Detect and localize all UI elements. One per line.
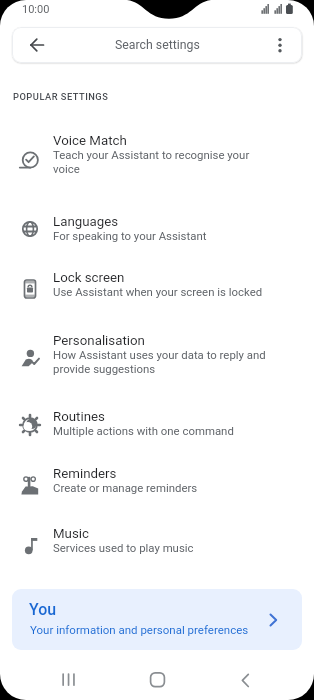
staticText: Lock screen	[53, 270, 125, 286]
staticText: Services used to play music	[53, 541, 194, 554]
button[interactable]: Voice Match	[0, 126, 314, 183]
button[interactable]: Music	[0, 519, 314, 562]
staticText: Use Assistant when your screen is locked	[53, 285, 263, 298]
button[interactable]: You	[12, 589, 302, 650]
staticText: Voice Match	[53, 133, 127, 149]
staticText: You	[29, 600, 57, 619]
staticText: Personalisation	[53, 333, 145, 349]
staticText: How Assistant uses your data to reply an…	[53, 348, 266, 376]
staticText: For speaking to your Assistant	[53, 229, 207, 242]
staticText: 10:00	[22, 3, 50, 16]
button[interactable]: Lock screen	[0, 263, 314, 306]
button[interactable]: Search settings	[12, 27, 302, 63]
staticText: Reminders	[53, 466, 117, 482]
staticText: Languages	[53, 214, 119, 230]
button[interactable]	[133, 656, 181, 700]
button[interactable]	[44, 656, 92, 700]
staticText: Teach your Assistant to recognise your v…	[53, 148, 250, 176]
staticText: Multiple actions with one command	[53, 424, 234, 437]
staticText: Create or manage reminders	[53, 481, 198, 494]
button[interactable]	[221, 656, 269, 700]
button[interactable]: Personalisation	[0, 326, 314, 383]
button[interactable]: Languages	[0, 207, 314, 250]
button[interactable]: Reminders	[0, 459, 314, 502]
staticText: Routines	[53, 409, 105, 425]
staticText: Your information and personal preference…	[30, 623, 249, 636]
staticText: POPULAR SETTINGS	[13, 91, 109, 102]
button[interactable]: Routines	[0, 402, 314, 445]
staticText: Search settings	[115, 38, 200, 52]
staticText: Music	[53, 526, 89, 542]
